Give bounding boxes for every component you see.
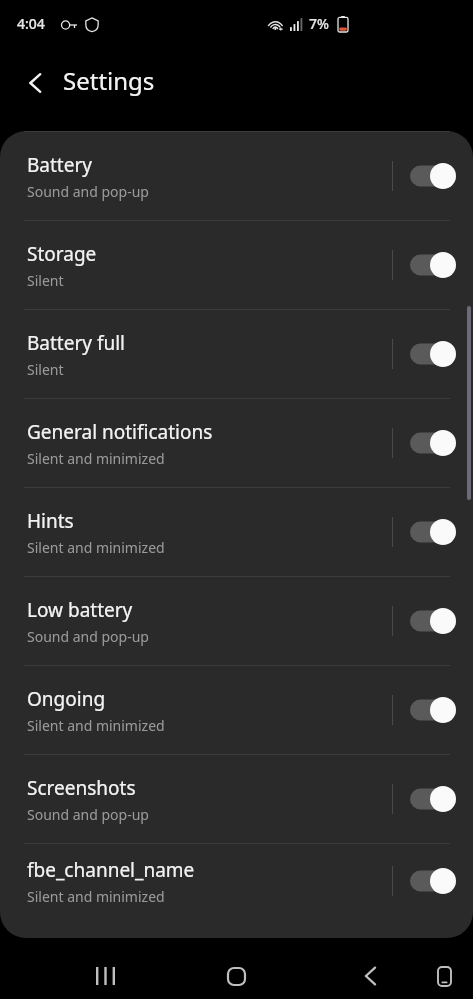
button[interactable]: Battery full	[0, 310, 473, 398]
button[interactable]: Toggle Screenshots	[393, 755, 473, 843]
button[interactable]: Recent apps	[78, 949, 132, 999]
button[interactable]: Toggle Low battery	[393, 577, 473, 665]
button[interactable]: Low battery	[0, 577, 473, 665]
staticText: General notifications	[27, 419, 213, 445]
button[interactable]: Storage	[0, 221, 473, 309]
staticText: fbe_channel_name	[27, 857, 195, 883]
staticText: Ongoing	[27, 686, 106, 712]
button[interactable]: Toggle Battery full	[393, 310, 473, 398]
button[interactable]: fbe_channel_name	[0, 844, 473, 918]
staticText: Sound and pop-up	[27, 805, 149, 824]
staticText: Silent	[27, 271, 64, 290]
staticText: Screenshots	[27, 775, 136, 801]
staticText: Sound and pop-up	[27, 182, 149, 201]
staticText: Silent and minimized	[27, 716, 165, 735]
button[interactable]: Device	[417, 949, 471, 999]
button[interactable]: General notifications	[0, 399, 473, 487]
button[interactable]: Back	[343, 949, 397, 999]
button[interactable]: Toggle Hints	[393, 488, 473, 576]
button[interactable]: Toggle General notifications	[393, 399, 473, 487]
button[interactable]: Ongoing	[0, 666, 473, 754]
staticText: Silent and minimized	[27, 887, 165, 906]
button[interactable]: Toggle Battery	[393, 132, 473, 220]
staticText: 7%	[309, 14, 329, 33]
button[interactable]: Hints	[0, 488, 473, 576]
staticText: Silent and minimized	[27, 449, 165, 468]
staticText: Silent and minimized	[27, 538, 165, 557]
staticText: Hints	[27, 508, 74, 534]
button[interactable]: Battery	[0, 132, 473, 220]
staticText: Battery full	[27, 330, 126, 356]
staticText: Low battery	[27, 597, 133, 623]
button[interactable]: Back	[14, 62, 56, 104]
button[interactable]: Toggle Storage	[393, 221, 473, 309]
staticText: 4:04	[17, 14, 45, 33]
staticText: Silent	[27, 360, 64, 379]
staticText: Storage	[27, 241, 97, 267]
staticText: Battery	[27, 152, 92, 178]
button[interactable]: Toggle Ongoing	[393, 666, 473, 754]
button[interactable]: Screenshots	[0, 755, 473, 843]
button[interactable]: Home	[209, 949, 263, 999]
button[interactable]: Toggle fbe_channel_name	[393, 844, 473, 918]
staticText: Sound and pop-up	[27, 627, 149, 646]
staticText: Settings	[63, 64, 155, 97]
